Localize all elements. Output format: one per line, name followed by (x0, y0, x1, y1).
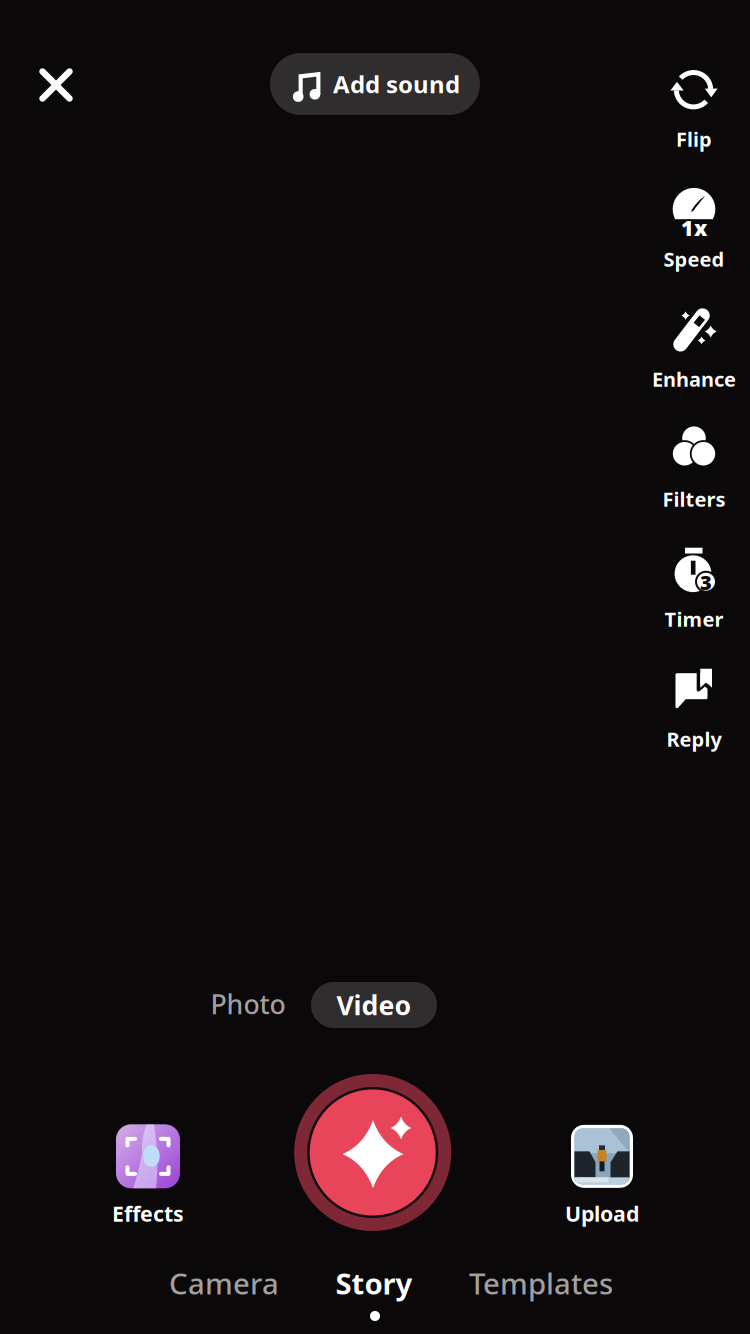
button[interactable]: Add sound (270, 53, 480, 115)
staticText: Timer (664, 606, 723, 632)
staticText: Reply (666, 726, 721, 752)
button[interactable]: Story (309, 1251, 438, 1314)
staticText: Camera (169, 1263, 279, 1302)
staticText: 1x (681, 215, 707, 243)
button[interactable]: Reply (638, 656, 750, 758)
staticText: Story (335, 1263, 412, 1302)
button[interactable]: Video (311, 982, 437, 1028)
button[interactable]: Photo (188, 974, 307, 1034)
staticText: Add sound (333, 68, 460, 100)
staticText: Enhance (652, 366, 736, 392)
staticText: 1x (681, 212, 707, 240)
staticText: Templates (469, 1263, 613, 1302)
staticText: Speed (663, 246, 724, 272)
staticText: Filters (662, 486, 725, 512)
button[interactable]: Effects (112, 1124, 184, 1228)
button[interactable]: 1x (638, 176, 750, 278)
button[interactable]: Camera (143, 1251, 305, 1314)
button[interactable]: 3 (638, 536, 750, 638)
staticText: 1x (682, 214, 708, 242)
staticText: Video (336, 987, 411, 1023)
button[interactable]: Templates (443, 1251, 639, 1314)
button[interactable]: Enhance (638, 296, 750, 398)
staticText: Flip (676, 126, 712, 152)
staticText: Effects (112, 1199, 184, 1228)
button[interactable]: Flip (638, 56, 750, 158)
staticText: Upload (565, 1199, 639, 1228)
staticText: 1x (680, 214, 706, 242)
button[interactable]: Close (24, 53, 87, 116)
staticText: 1x (681, 214, 707, 242)
staticText: 3 (700, 569, 712, 595)
button[interactable]: Filters (638, 416, 750, 518)
button[interactable]: Record (293, 1072, 453, 1232)
button[interactable]: Upload (565, 1124, 639, 1228)
staticText: Photo (210, 986, 285, 1022)
